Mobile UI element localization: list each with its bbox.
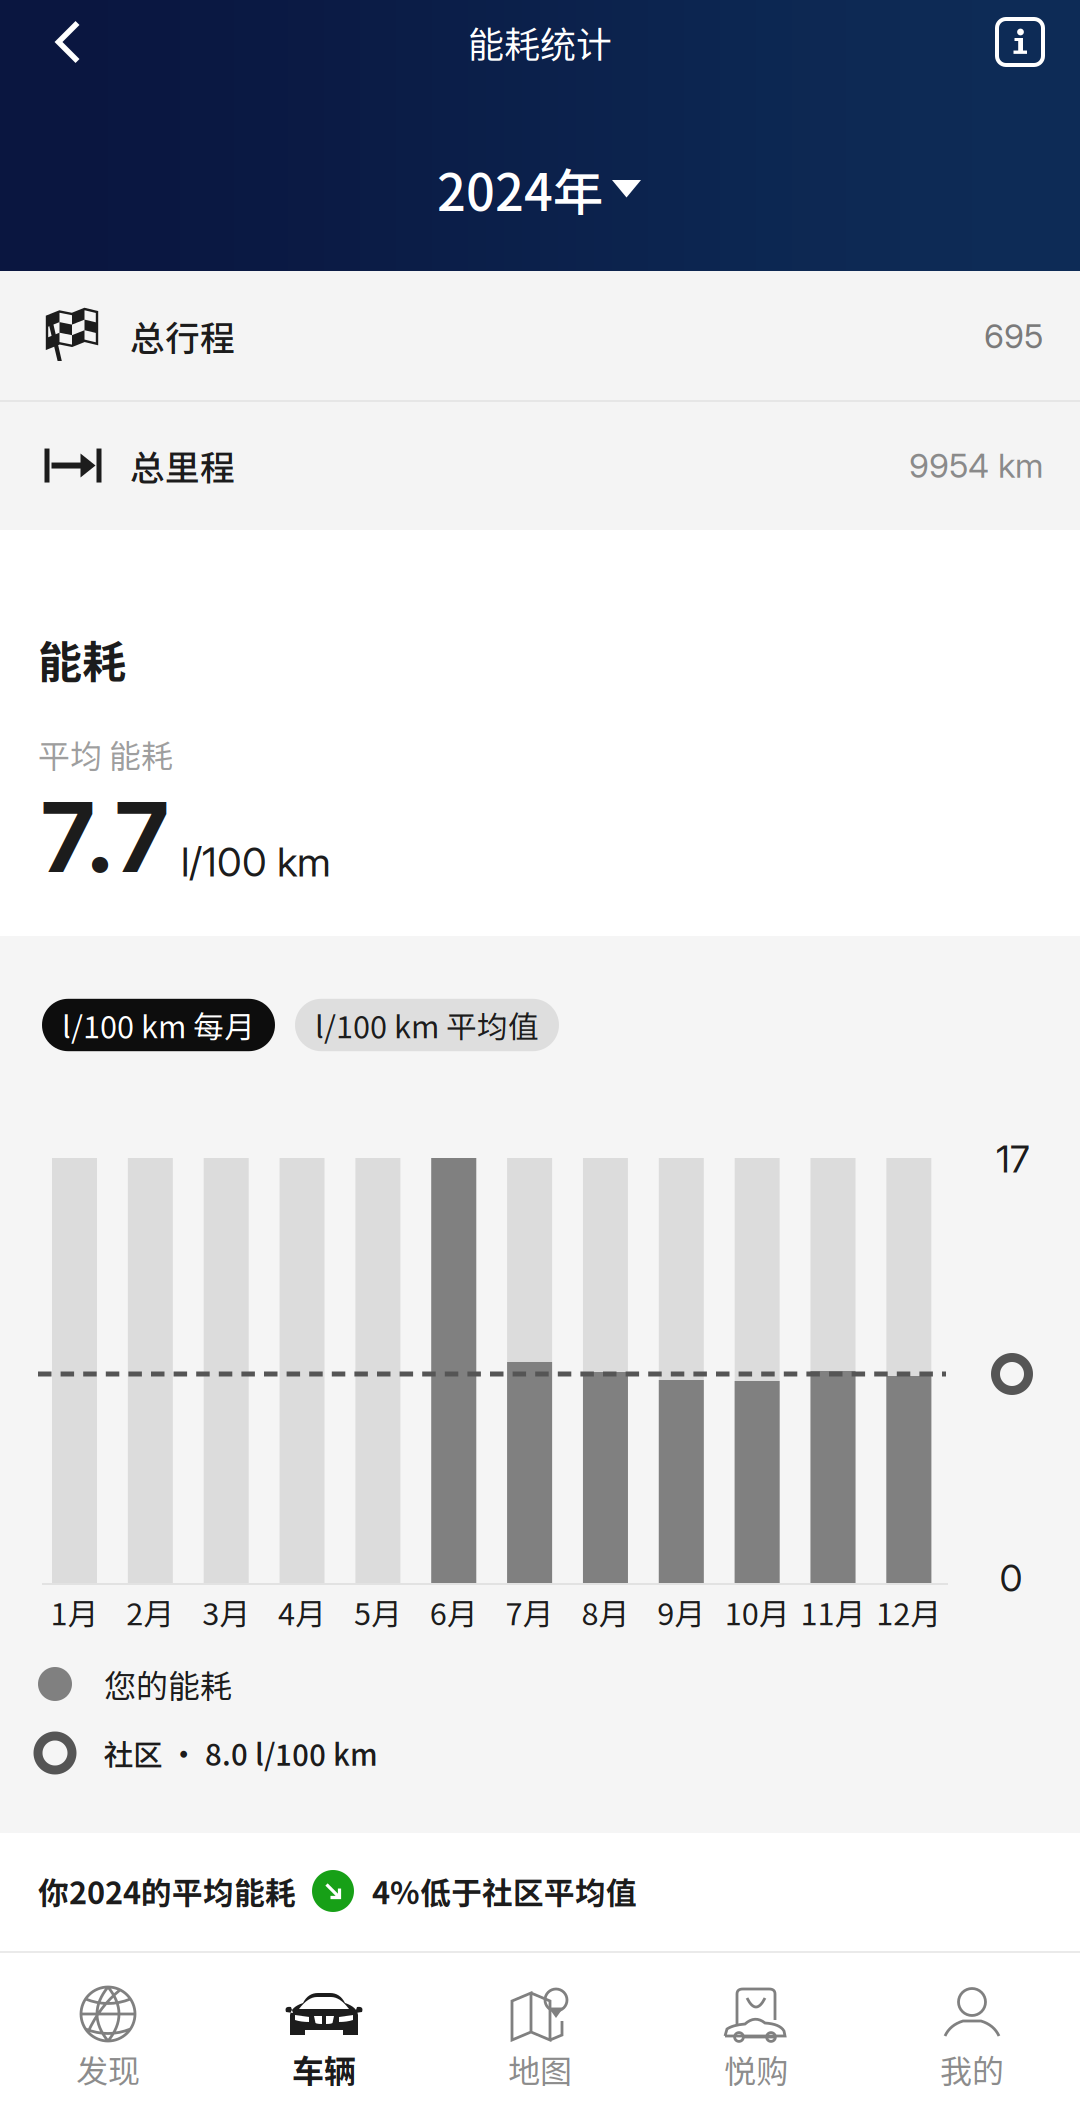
staticText: 2月 [126, 1590, 174, 1634]
button[interactable]: l/100 km 每月 [42, 999, 275, 1051]
staticText: 695 [984, 316, 1043, 356]
staticText: 5月 [354, 1590, 402, 1634]
button[interactable]: 车辆 [216, 1953, 432, 2102]
staticText: l/100 km 每月 [62, 1003, 255, 1047]
button[interactable]: 2024年 [374, 141, 704, 237]
staticText: 地图 [508, 2046, 572, 2092]
button[interactable]: l/100 km 平均值 [295, 999, 559, 1051]
staticText: 您的能耗 [104, 1661, 232, 1707]
staticText: 悦购 [724, 2046, 788, 2092]
button[interactable]: 总里程 [0, 401, 1080, 530]
staticText: 4%低于社区平均值 [372, 1869, 637, 1913]
staticText: 能耗 [38, 627, 126, 691]
staticText: 8月 [581, 1590, 629, 1634]
staticText: 6月 [430, 1590, 478, 1634]
staticText: 17 [996, 1136, 1030, 1182]
button[interactable]: 总行程 [0, 271, 1080, 401]
staticText: 11月 [800, 1590, 865, 1634]
button[interactable]: 我的 [864, 1953, 1080, 2102]
staticText: 9月 [657, 1590, 705, 1634]
button[interactable]: 发现 [0, 1953, 216, 2102]
staticText: 我的 [940, 2046, 1004, 2092]
staticText: 0 [999, 1555, 1022, 1601]
staticText: 12月 [876, 1590, 941, 1634]
staticText: 发现 [76, 2046, 140, 2092]
staticText: 社区 • 8.0 l/100 km [104, 1732, 378, 1774]
staticText: 7月 [506, 1590, 554, 1634]
staticText: l/100 km 平均值 [315, 1003, 539, 1047]
staticText: 3月 [202, 1590, 250, 1634]
button[interactable]: 地图 [432, 1953, 648, 2102]
button[interactable]: 返回 [16, 0, 120, 84]
staticText: 总行程 [130, 311, 235, 361]
staticText: 9954 km [909, 445, 1043, 486]
staticText: 4月 [278, 1590, 326, 1634]
staticText: 平均 能耗 [38, 731, 173, 777]
staticText: 1月 [50, 1590, 98, 1634]
staticText: 能耗统计 [468, 16, 612, 68]
staticText: 你2024的平均能耗 [38, 1869, 296, 1913]
staticText: 总里程 [130, 440, 235, 491]
staticText: 2024年 [437, 152, 604, 226]
staticText: 10月 [725, 1590, 790, 1634]
staticText: l/100 km [181, 838, 331, 886]
staticText: 7.7 [40, 779, 170, 895]
button[interactable]: 悦购 [648, 1953, 864, 2102]
staticText: 车辆 [292, 2046, 356, 2092]
button[interactable]: 信息 [968, 0, 1072, 84]
